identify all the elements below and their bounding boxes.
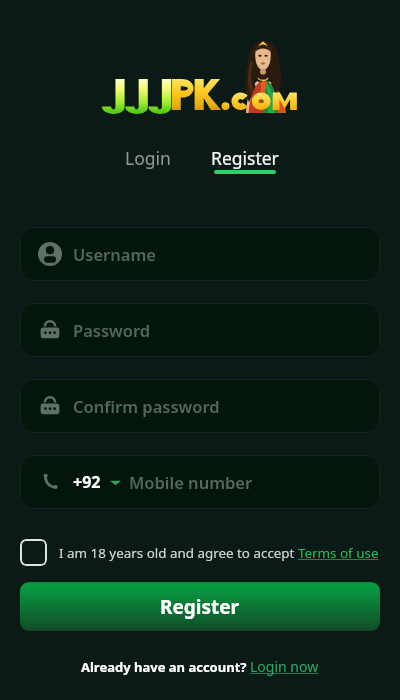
staticText: I am 18 years old and agree to accept: [59, 544, 298, 562]
button[interactable]: Username: [20, 227, 380, 281]
staticText: Login now: [250, 657, 319, 676]
staticText: +92: [73, 471, 101, 493]
button[interactable]: Register: [197, 140, 293, 180]
staticText: Password: [73, 319, 151, 341]
button[interactable]: Confirm password: [20, 379, 380, 433]
staticText: Confirm password: [73, 395, 220, 417]
button[interactable]: +92: [20, 455, 380, 509]
staticText: Terms of use: [298, 544, 379, 562]
button[interactable]: Login now: [250, 657, 319, 676]
staticText: Username: [73, 243, 156, 265]
staticText: Already have an account?: [81, 658, 250, 676]
button[interactable]: Register: [20, 582, 380, 631]
staticText: Register: [211, 146, 279, 170]
staticText: Register: [160, 594, 240, 620]
button[interactable]: I am 18 years old checkbox: [20, 539, 47, 566]
staticText: Mobile number: [129, 471, 253, 493]
staticText: Login: [125, 146, 171, 170]
button[interactable]: Password: [20, 303, 380, 357]
button[interactable]: Login: [111, 140, 185, 176]
button[interactable]: Terms of use: [298, 544, 379, 562]
